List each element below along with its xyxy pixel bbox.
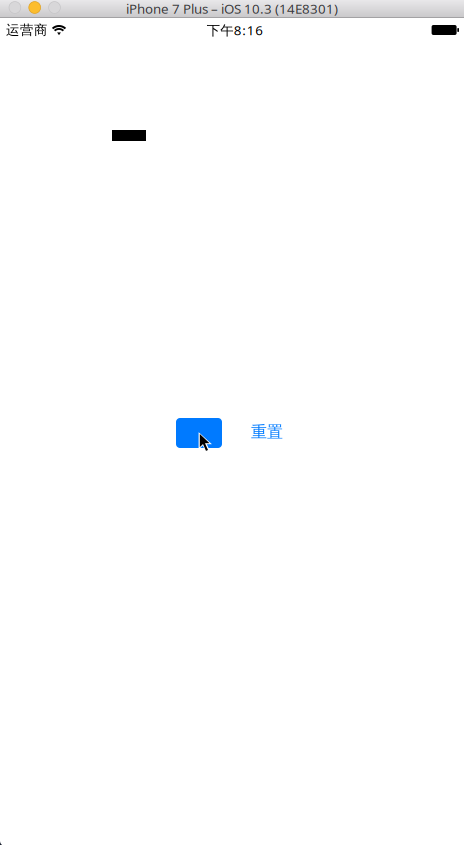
staticText: 重置 bbox=[251, 422, 283, 442]
button[interactable]: Action bbox=[176, 418, 222, 448]
staticText: 运营商 bbox=[6, 22, 47, 38]
staticText: 下午8:16 bbox=[207, 21, 263, 39]
button[interactable]: Zoom bbox=[49, 2, 60, 13]
staticText: iPhone 7 Plus – iOS 10.3 (14E8301) bbox=[126, 0, 338, 17]
button[interactable]: 重置 bbox=[251, 422, 283, 442]
button[interactable]: Minimize bbox=[29, 2, 41, 13]
button[interactable]: Close bbox=[9, 2, 21, 13]
